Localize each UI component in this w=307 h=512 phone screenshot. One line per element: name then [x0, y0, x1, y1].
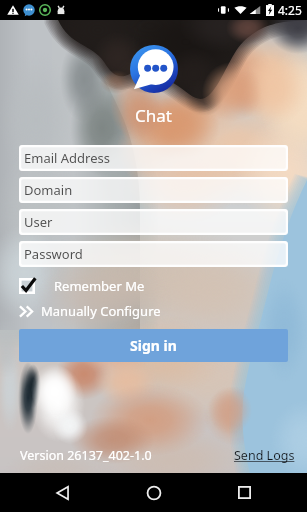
button[interactable]: Home [126, 473, 182, 512]
button[interactable]: Remember Me [19, 275, 288, 297]
staticText: Manually Configure [41, 302, 161, 320]
button[interactable]: Send Logs [234, 447, 295, 464]
button[interactable]: Password [19, 241, 288, 267]
button[interactable]: Sign in [19, 329, 288, 362]
staticText: Domain [24, 181, 73, 199]
button[interactable]: User [19, 209, 288, 235]
staticText: User [24, 213, 53, 231]
button[interactable]: Back [35, 473, 91, 512]
button[interactable]: Manually Configure [19, 301, 288, 321]
button[interactable]: Recents [216, 473, 272, 512]
staticText: Version 26137_402-1.0 [20, 447, 152, 464]
staticText: 4:25 [278, 2, 302, 18]
staticText: Remember Me [54, 277, 145, 295]
staticText: Sign in [130, 336, 177, 355]
staticText: Email Address [24, 149, 110, 167]
staticText: Password [24, 245, 83, 263]
button[interactable]: Domain [19, 177, 288, 203]
staticText: Chat [135, 104, 172, 127]
button[interactable]: Email Address [19, 145, 288, 171]
